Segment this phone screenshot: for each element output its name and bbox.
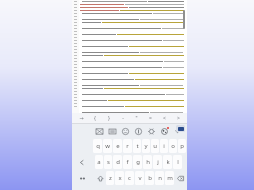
button[interactable]: z — [106, 171, 114, 185]
button[interactable]: x — [115, 171, 124, 185]
button[interactable]: o — [169, 139, 177, 153]
staticText: f — [126, 158, 129, 166]
button[interactable]: i — [160, 139, 168, 153]
button[interactable]: Stickers — [94, 126, 105, 137]
button[interactable]: s — [104, 155, 112, 169]
staticText: g — [136, 158, 140, 166]
button[interactable]: y — [142, 139, 150, 153]
staticText: { — [94, 115, 96, 122]
button[interactable]: > — [173, 113, 183, 123]
button[interactable]: c — [125, 171, 134, 185]
button[interactable]: l — [173, 155, 182, 169]
button[interactable]: u — [151, 139, 159, 153]
button[interactable]: Symbols — [73, 171, 91, 185]
staticText: k — [166, 158, 170, 166]
button[interactable]: Voice — [133, 126, 144, 137]
staticText: j — [157, 158, 159, 166]
staticText: w — [105, 142, 110, 150]
staticText: o — [171, 142, 175, 150]
button[interactable]: k — [163, 155, 172, 169]
button[interactable]: w — [103, 139, 112, 153]
button[interactable]: Backspace — [175, 171, 186, 185]
staticText: r — [126, 142, 129, 150]
staticText: b — [148, 174, 152, 182]
button[interactable]: - — [118, 113, 128, 123]
button[interactable]: q — [93, 139, 102, 153]
staticText: p — [180, 142, 184, 150]
staticText: " — [135, 115, 138, 122]
button[interactable]: GIF — [107, 126, 118, 137]
button[interactable]: b — [145, 171, 154, 185]
staticText: z — [109, 174, 112, 182]
button[interactable]: = — [145, 113, 155, 123]
button[interactable]: n — [155, 171, 164, 185]
button[interactable]: Shift — [95, 171, 105, 185]
staticText: i — [163, 142, 165, 150]
staticText: < — [163, 115, 166, 122]
button[interactable]: " — [131, 113, 141, 123]
staticText: t — [136, 142, 139, 150]
staticText: → — [79, 115, 84, 121]
button[interactable]: h — [143, 155, 152, 169]
button[interactable]: r — [123, 139, 132, 153]
staticText: s — [107, 158, 110, 166]
button[interactable]: e — [113, 139, 122, 153]
staticText: l — [177, 158, 179, 166]
staticText: a — [97, 158, 101, 166]
staticText: u — [153, 142, 157, 150]
staticText: m — [167, 174, 173, 182]
button[interactable]: More — [172, 126, 183, 137]
staticText: h — [146, 158, 150, 166]
button[interactable]: < — [159, 113, 169, 123]
button[interactable]: m — [165, 171, 174, 185]
button[interactable]: j — [153, 155, 162, 169]
staticText: e — [116, 142, 120, 150]
staticText: c — [128, 174, 131, 182]
button[interactable]: Settings — [146, 126, 157, 137]
button[interactable]: { — [90, 113, 100, 123]
button[interactable]: Themes — [159, 126, 170, 137]
staticText: > — [177, 115, 180, 122]
button[interactable]: f — [123, 155, 132, 169]
button[interactable]: Emoji — [120, 126, 131, 137]
staticText: q — [96, 142, 100, 150]
button[interactable]: Cursor left — [73, 155, 91, 169]
button[interactable]: t — [133, 139, 141, 153]
button[interactable]: } — [104, 113, 114, 123]
staticText: n — [158, 174, 162, 182]
button[interactable]: p — [178, 139, 186, 153]
staticText: } — [108, 115, 110, 122]
button[interactable]: a — [95, 155, 103, 169]
staticText: d — [116, 158, 120, 166]
button[interactable]: d — [113, 155, 122, 169]
staticText: x — [118, 174, 122, 182]
staticText: v — [138, 174, 142, 182]
staticText: - — [122, 115, 124, 122]
staticText: y — [144, 142, 148, 150]
button[interactable]: → — [76, 113, 86, 123]
button[interactable] — [79, 0, 187, 113]
button[interactable]: g — [133, 155, 142, 169]
button[interactable]: Clipboard — [176, 125, 185, 132]
button[interactable]: v — [135, 171, 144, 185]
staticText: = — [149, 115, 152, 122]
